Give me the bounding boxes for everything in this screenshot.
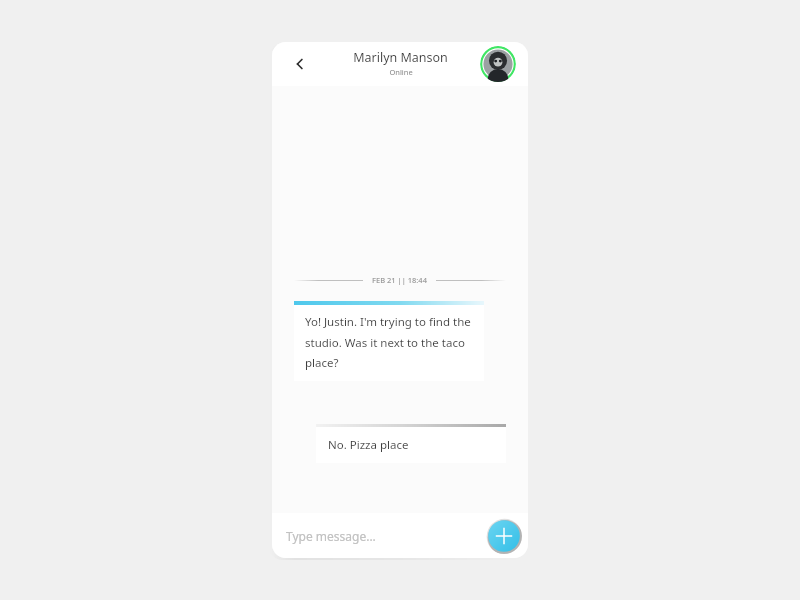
button[interactable]: New message <box>486 518 522 554</box>
button[interactable]: No. Pizza place <box>316 424 506 463</box>
staticText: No. Pizza place <box>328 437 409 453</box>
staticText: Marilyn Manson <box>353 49 448 66</box>
button[interactable]: Contact profile photo <box>480 46 516 82</box>
staticText: FEB 21 || 18:44 <box>372 275 427 285</box>
staticText: Yo! Justin. I'm trying to find the studi… <box>305 314 473 370</box>
staticText: Online <box>389 67 413 77</box>
button[interactable]: Back <box>285 49 315 79</box>
button[interactable]: Yo! Justin. I'm trying to find the studi… <box>294 301 484 381</box>
staticText: Type message... <box>286 528 376 544</box>
button[interactable]: Type message... <box>286 521 456 551</box>
